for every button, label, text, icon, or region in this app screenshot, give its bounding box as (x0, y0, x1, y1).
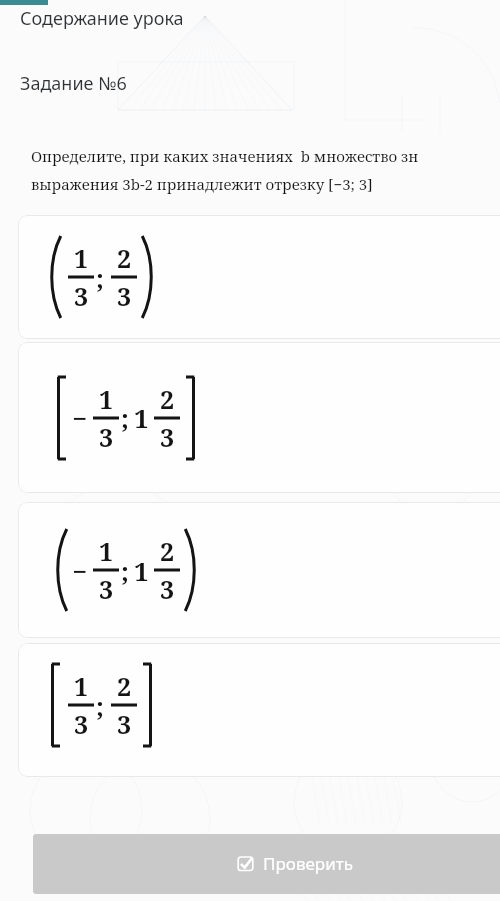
staticText: Проверить (263, 852, 353, 875)
staticText: 2 (117, 669, 132, 703)
staticText: 1 (134, 400, 149, 435)
button[interactable]: 1 (18, 215, 500, 339)
staticText: 1 (74, 241, 89, 275)
staticText: ; (96, 688, 104, 723)
staticText: 1 (99, 534, 114, 568)
staticText: ; (121, 553, 129, 588)
button[interactable]: − (18, 342, 500, 493)
staticText: 3 (99, 572, 114, 606)
staticText: 2 (117, 241, 132, 275)
staticText: 2 (160, 382, 175, 416)
staticText: Задание №6 (20, 71, 127, 96)
staticText: Содержание урока (20, 6, 184, 31)
staticText: 1 (134, 553, 149, 588)
staticText: выражения 3b-2 принадлежит отрезку [−3; … (31, 174, 500, 194)
button[interactable]: − (18, 502, 500, 638)
button[interactable]: Проверить (33, 834, 500, 894)
staticText: 3 (160, 572, 175, 606)
staticText: 3 (160, 420, 175, 454)
staticText: 1 (74, 669, 89, 703)
button[interactable]: 1 (18, 643, 500, 777)
staticText: 3 (117, 707, 132, 741)
staticText: − (72, 400, 88, 435)
staticText: 1 (99, 382, 114, 416)
staticText: Определите, при каких значениях b множес… (31, 146, 500, 166)
staticText: 3 (117, 279, 132, 313)
staticText: 3 (74, 279, 89, 313)
staticText: − (72, 553, 88, 588)
staticText: ; (96, 260, 104, 295)
staticText: 3 (99, 420, 114, 454)
staticText: ; (121, 400, 129, 435)
staticText: 3 (74, 707, 89, 741)
staticText: 2 (160, 534, 175, 568)
